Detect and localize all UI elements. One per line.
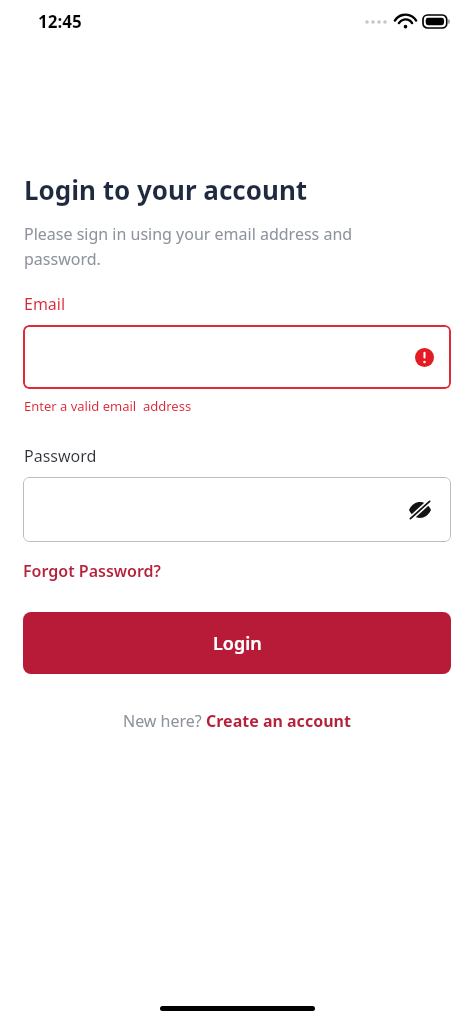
staticText: Password [24, 445, 97, 467]
staticText: Login [213, 631, 262, 656]
button[interactable]: Show password [403, 493, 437, 527]
staticText: Please sign in using your email address … [24, 223, 384, 269]
staticText: 12:45 [38, 10, 82, 33]
button[interactable]: Show password [23, 477, 451, 542]
staticText: Enter a valid email address [24, 397, 192, 415]
button[interactable]: New here? [119, 706, 355, 736]
button[interactable]: Login [23, 612, 451, 674]
button[interactable]: Forgot Password? [23, 558, 161, 584]
button[interactable] [23, 325, 451, 389]
staticText: Forgot Password? [23, 560, 161, 582]
staticText: Email [24, 293, 66, 315]
staticText: Login to your account [24, 172, 308, 207]
staticText: Create an account [206, 710, 351, 732]
staticText: New here? [123, 710, 206, 732]
